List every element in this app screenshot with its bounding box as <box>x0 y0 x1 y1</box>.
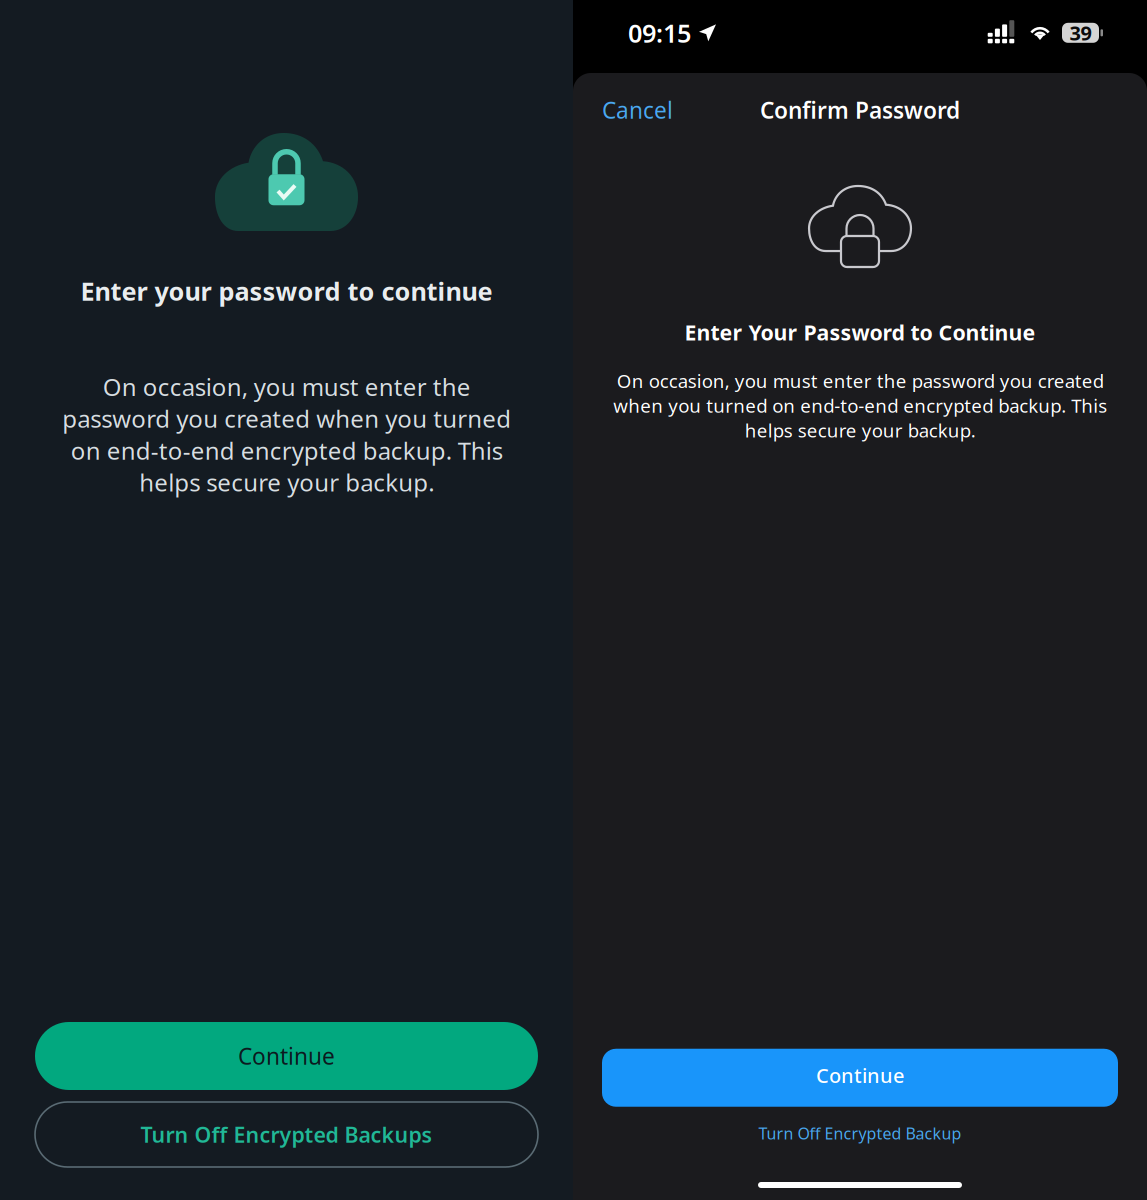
staticText: Continue <box>238 1041 335 1071</box>
button[interactable]: Continue <box>602 1049 1118 1107</box>
staticText: On occasion, you must enter the password… <box>613 368 1107 443</box>
staticText: On occasion, you must enter the password… <box>62 371 511 498</box>
staticText: Confirm Password <box>760 95 960 125</box>
button[interactable]: Continue <box>35 1022 538 1090</box>
staticText: Enter your password to continue <box>80 274 492 308</box>
staticText: Cancel <box>602 95 673 125</box>
button[interactable]: Cancel <box>594 86 681 134</box>
staticText: Turn Off Encrypted Backups <box>140 1120 432 1149</box>
button[interactable]: Turn Off Encrypted Backups <box>35 1102 538 1167</box>
staticText: Turn Off Encrypted Backup <box>758 1123 961 1144</box>
staticText: 39 <box>1069 19 1091 46</box>
staticText: Continue <box>816 1062 904 1089</box>
button[interactable]: Turn Off Encrypted Backup <box>748 1117 971 1150</box>
staticText: 09:15 <box>628 16 691 50</box>
staticText: Enter Your Password to Continue <box>684 318 1035 346</box>
